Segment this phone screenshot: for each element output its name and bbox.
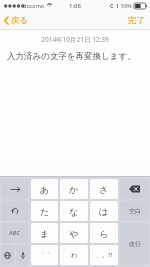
button[interactable]: は [90,201,118,221]
staticText: docomo [23,2,45,9]
button[interactable]: か [60,179,88,199]
staticText: 空白 [129,207,141,215]
button[interactable]: ABC [1,223,29,243]
button[interactable]: ら [90,223,118,243]
button[interactable]: さ [90,179,118,199]
button[interactable]: Dictation [16,245,29,265]
staticText: 2014年10月21日 12:39 [0,35,150,44]
staticText: ま [40,228,50,239]
button[interactable]: な [60,201,88,221]
staticText: 、。?! [96,251,113,259]
button[interactable]: あ [31,179,58,199]
button[interactable]: ま [31,223,58,243]
staticText: な [69,206,79,217]
button[interactable]: ゛゜ [31,245,58,265]
button[interactable]: 戻る [0,12,35,29]
staticText: 改行 [129,240,141,248]
staticText: ら [99,228,109,239]
button[interactable]: 、。?! [90,245,118,265]
staticText: ゛゜ [38,251,51,259]
staticText: 入力済みの文字を再変換します。 [7,51,136,62]
staticText: 完了 [128,15,145,26]
staticText: 戻る [11,15,29,26]
staticText: わ [71,251,78,259]
staticText: か [69,184,79,195]
button[interactable]: た [31,201,58,221]
button[interactable]: Return [120,223,149,265]
staticText: た [40,206,50,217]
staticText: 59% [121,2,132,9]
button[interactable]: Next [1,179,29,199]
button[interactable]: Delete [120,179,149,199]
button[interactable]: Globe [1,245,14,265]
button[interactable]: Space [120,201,149,221]
button[interactable]: 完了 [123,12,150,29]
button[interactable]: わ [60,245,88,265]
staticText: は [99,206,109,217]
staticText: ABC [9,229,21,237]
staticText: さ [99,184,109,195]
button[interactable]: や [60,223,88,243]
button[interactable]: Undo [1,201,29,221]
staticText: あ [40,184,50,195]
staticText: や [69,228,79,239]
staticText: 1:06 [69,2,81,10]
